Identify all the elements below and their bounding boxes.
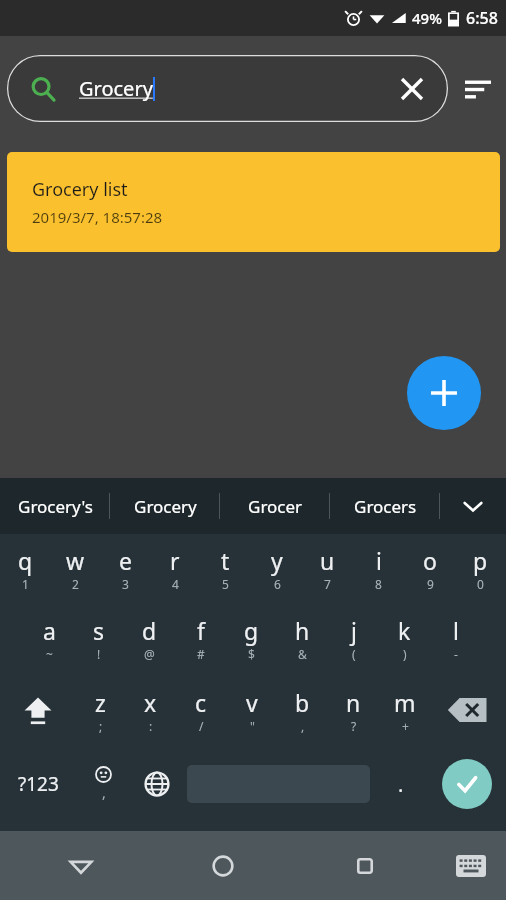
button[interactable]: c xyxy=(175,674,226,746)
staticText: ~ xyxy=(46,646,53,662)
button[interactable]: Change language xyxy=(130,746,183,822)
staticText: ?123 xyxy=(18,771,59,797)
button[interactable]: ?123 xyxy=(0,746,77,822)
staticText: Grocery list xyxy=(32,177,128,202)
button[interactable]: Grocery xyxy=(7,55,448,122)
staticText: - xyxy=(454,646,458,662)
staticText: i xyxy=(376,545,382,576)
staticText: ) xyxy=(403,646,407,662)
button[interactable]: Clear xyxy=(392,69,432,109)
staticText: a xyxy=(43,615,56,646)
button[interactable]: e xyxy=(100,534,150,602)
staticText: : xyxy=(149,718,153,734)
staticText: @ xyxy=(144,646,155,662)
staticText: u xyxy=(320,545,335,576)
staticText: ; xyxy=(99,718,103,734)
staticText: , xyxy=(301,718,305,734)
button[interactable]: j xyxy=(328,602,379,674)
button[interactable]: o xyxy=(404,534,455,602)
staticText: w xyxy=(66,545,85,576)
staticText: ( xyxy=(352,646,356,662)
staticText: m xyxy=(394,687,416,718)
staticText: l xyxy=(453,615,459,646)
button[interactable]: Grocery's xyxy=(0,478,110,534)
button[interactable]: Grocery xyxy=(110,478,220,534)
staticText: ! xyxy=(97,646,101,662)
staticText: s xyxy=(93,615,105,646)
button[interactable]: Keyboard xyxy=(436,831,506,900)
staticText: f xyxy=(197,615,205,646)
button[interactable]: q xyxy=(0,534,50,602)
button[interactable]: More suggestions xyxy=(440,478,506,534)
button[interactable]: v xyxy=(226,674,277,746)
button[interactable]: Backspace xyxy=(430,674,506,746)
staticText: 7 xyxy=(324,576,331,592)
button[interactable]: z xyxy=(75,674,125,746)
button[interactable]: f xyxy=(175,602,226,674)
button[interactable]: Grocer xyxy=(220,478,330,534)
staticText: n xyxy=(346,687,361,718)
button[interactable]: p xyxy=(455,534,506,602)
button[interactable]: Emoji xyxy=(77,746,130,822)
button[interactable]: h xyxy=(277,602,328,674)
staticText: Grocer xyxy=(248,495,303,518)
staticText: k xyxy=(398,615,411,646)
staticText: , xyxy=(102,783,106,802)
button[interactable]: Done xyxy=(442,759,492,809)
button[interactable]: a xyxy=(24,602,74,674)
button[interactable]: t xyxy=(200,534,251,602)
staticText: 0 xyxy=(477,576,484,592)
button[interactable]: Add xyxy=(407,356,481,430)
staticText: 1 xyxy=(22,576,29,592)
button[interactable]: u xyxy=(302,534,353,602)
button[interactable]: Shift xyxy=(0,674,75,746)
staticText: 6:58 xyxy=(466,7,498,29)
button[interactable]: y xyxy=(251,534,302,602)
staticText: 4 xyxy=(172,576,179,592)
staticText: Grocery xyxy=(79,75,153,102)
button[interactable]: Home xyxy=(152,831,294,900)
button[interactable]: Recents xyxy=(294,831,436,900)
staticText: d xyxy=(142,615,157,646)
button[interactable]: r xyxy=(150,534,200,602)
button[interactable]: n xyxy=(328,674,379,746)
staticText: p xyxy=(473,545,488,576)
button[interactable]: Grocers xyxy=(330,478,440,534)
staticText: z xyxy=(95,687,106,718)
button[interactable]: Sort xyxy=(454,65,502,113)
staticText: / xyxy=(199,718,204,734)
button[interactable]: l xyxy=(430,602,481,674)
staticText: $ xyxy=(248,646,255,662)
staticText: + xyxy=(402,718,409,734)
staticText: o xyxy=(423,545,437,576)
staticText: y xyxy=(271,545,283,576)
staticText: 9 xyxy=(427,576,434,592)
button[interactable]: b xyxy=(277,674,328,746)
staticText: ? xyxy=(351,718,357,734)
staticText: 6 xyxy=(274,576,281,592)
button[interactable]: g xyxy=(226,602,277,674)
staticText: 8 xyxy=(375,576,382,592)
staticText: 2019/3/7, 18:57:28 xyxy=(32,207,163,227)
button[interactable]: x xyxy=(125,674,175,746)
button[interactable]: . xyxy=(374,746,427,822)
staticText: h xyxy=(295,615,310,646)
button[interactable]: k xyxy=(379,602,430,674)
staticText: e xyxy=(119,545,132,576)
staticText: x xyxy=(144,687,157,718)
button[interactable]: Back xyxy=(10,831,152,900)
button[interactable]: i xyxy=(353,534,404,602)
button[interactable]: m xyxy=(379,674,430,746)
button[interactable]: Grocery list xyxy=(7,152,500,252)
staticText: g xyxy=(244,615,259,646)
staticText: c xyxy=(195,687,207,718)
button[interactable]: w xyxy=(50,534,100,602)
staticText: q xyxy=(18,545,33,576)
staticText: Grocery xyxy=(134,495,197,518)
staticText: v xyxy=(246,687,258,718)
staticText: 2 xyxy=(72,576,79,592)
staticText: . xyxy=(398,771,404,798)
button[interactable]: s xyxy=(74,602,124,674)
button[interactable]: d xyxy=(124,602,175,674)
